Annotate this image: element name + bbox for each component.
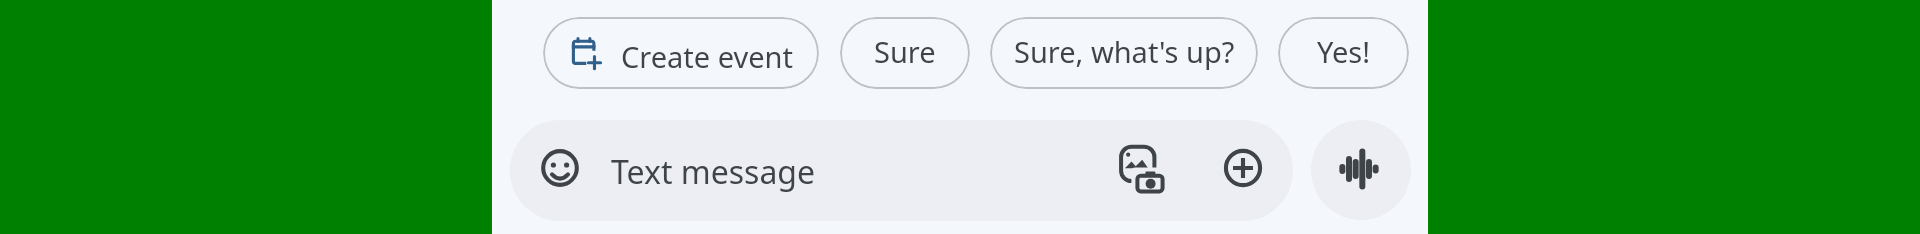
button[interactable]: Yes!: [1278, 17, 1409, 89]
button[interactable]: Sure: [840, 17, 970, 89]
button[interactable]: Sure, what's up?: [990, 17, 1258, 89]
staticText: Sure: [874, 32, 936, 71]
button[interactable]: Emoji: [527, 135, 593, 201]
button[interactable]: Gallery and camera: [1110, 136, 1176, 202]
staticText: Text message: [611, 150, 816, 194]
staticText: Yes!: [1317, 32, 1371, 71]
staticText: Create event: [621, 37, 793, 76]
button[interactable]: Create event: [543, 17, 819, 89]
staticText: Sure, what's up?: [1014, 32, 1235, 71]
button[interactable]: Emoji: [510, 120, 1293, 221]
button[interactable]: Add attachment: [1210, 135, 1276, 201]
button[interactable]: Record audio message: [1311, 120, 1411, 220]
